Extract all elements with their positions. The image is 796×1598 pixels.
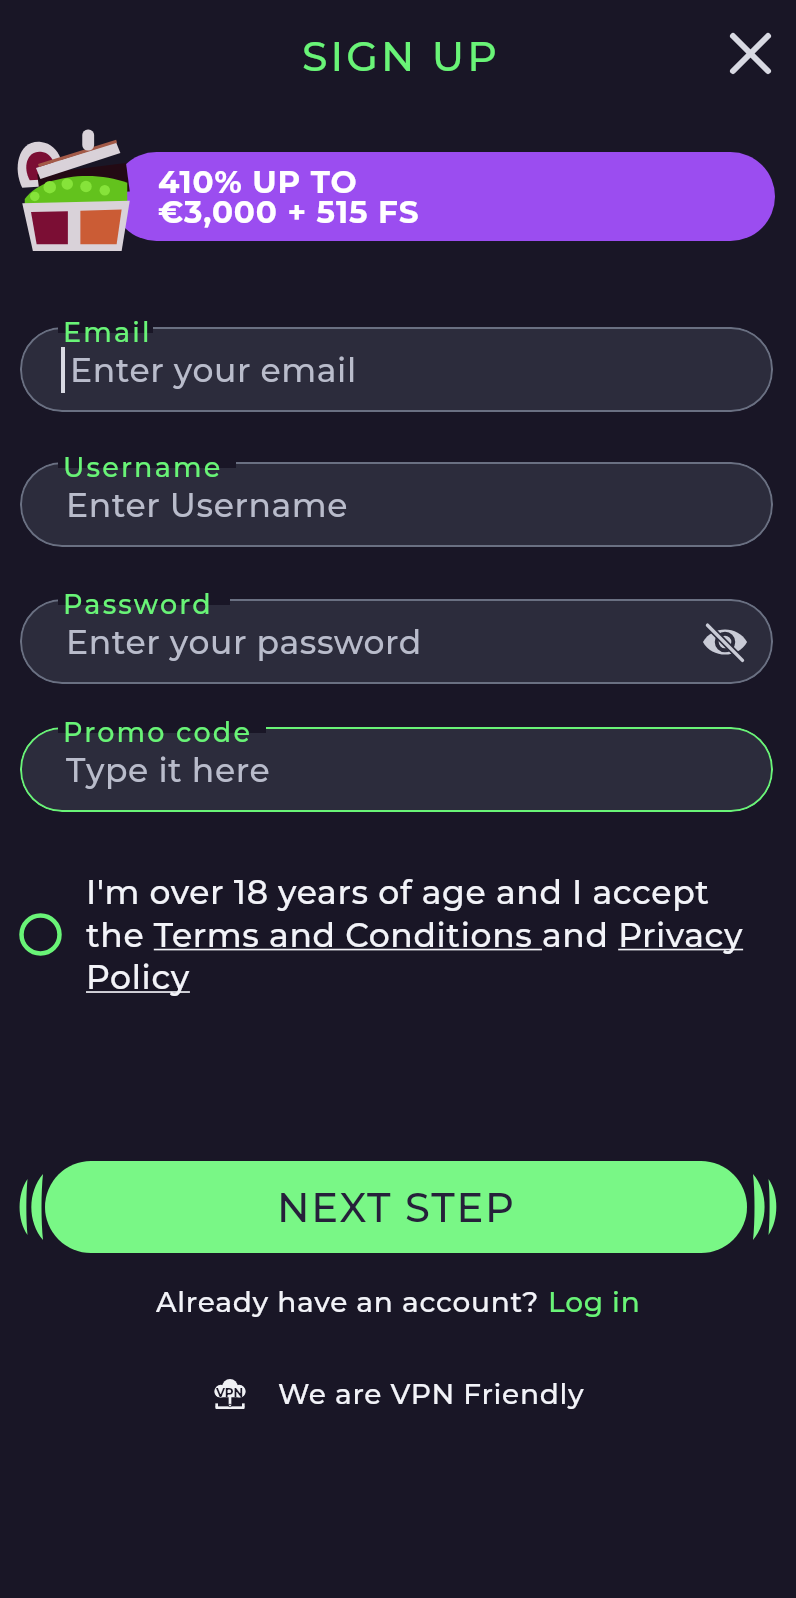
button[interactable]: I am over 18: [16, 910, 64, 958]
staticText: Already have an account?: [156, 1285, 548, 1319]
staticText: Promo code: [63, 716, 253, 749]
staticText: Enter your email: [70, 350, 357, 390]
button[interactable]: NEXT STEP: [45, 1161, 747, 1253]
button[interactable]: Enter your email: [20, 327, 773, 412]
staticText: NEXT STEP: [277, 1183, 516, 1232]
staticText: SIGN UP: [302, 31, 500, 81]
button[interactable]: Close: [718, 21, 782, 85]
staticText: Username: [63, 451, 223, 484]
staticText: Enter your password: [66, 622, 422, 662]
button[interactable]: Enter your password: [20, 599, 773, 684]
staticText: I'm over 18 years of age and I accept th…: [86, 872, 756, 997]
staticText: Email: [63, 316, 152, 349]
button[interactable]: Log in: [548, 1285, 641, 1319]
staticText: 410% UP TO €3,000 + 515 FS: [158, 163, 420, 231]
staticText: VPN: [216, 1385, 244, 1400]
staticText: Password: [63, 588, 213, 621]
button[interactable]: Show password: [699, 616, 751, 668]
button[interactable]: I'm over 18 years of age and I accept th…: [86, 872, 756, 997]
button[interactable]: Type it here: [20, 727, 773, 812]
button[interactable]: 410% UP TO €3,000 + 515 FS: [112, 152, 775, 241]
button[interactable]: Enter Username: [20, 462, 773, 547]
staticText: We are VPN Friendly: [278, 1377, 585, 1411]
staticText: Enter Username: [66, 485, 349, 525]
staticText: Type it here: [66, 750, 271, 790]
